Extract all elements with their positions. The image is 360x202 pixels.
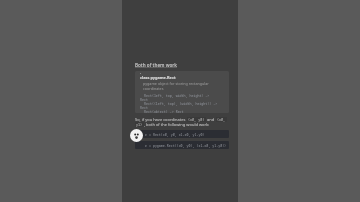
- staticText: , both of the following would work:: [144, 122, 210, 127]
- staticText: r = Rect(x0, y0, x1-x0, y1-y0): [145, 132, 205, 136]
- staticText: Rect: [140, 105, 148, 109]
- staticText: Rect((left, top), (width, height)) ->: [144, 101, 218, 105]
- staticText: (x0,: [217, 117, 226, 122]
- staticText: y1): [136, 122, 143, 127]
- staticText: Rect: [140, 97, 148, 101]
- staticText: Both of them work: [135, 62, 178, 68]
- staticText: Rect(object) -> Rect: [144, 109, 184, 113]
- button[interactable]: class pygame.Rect: [135, 71, 229, 113]
- staticText: Rect(left, top, width, height) ->: [144, 93, 210, 97]
- staticText: and: [206, 117, 216, 122]
- staticText: So, if you have coordinates: [135, 117, 187, 122]
- button[interactable]: Profile avatar: [130, 129, 143, 142]
- button[interactable]: r = pygame.Rect((x0, y0), (x1-x0, y1-y0)…: [135, 141, 229, 149]
- staticText: pygame object for storing rectangular co…: [143, 81, 209, 91]
- button[interactable]: r = Rect(x0, y0, x1-x0, y1-y0): [135, 130, 229, 138]
- staticText: class pygame.Rect: [140, 75, 176, 80]
- staticText: r = pygame.Rect((x0, y0), (x1-x0, y1-y0)…: [145, 143, 227, 147]
- staticText: (x0, y0): [188, 117, 205, 122]
